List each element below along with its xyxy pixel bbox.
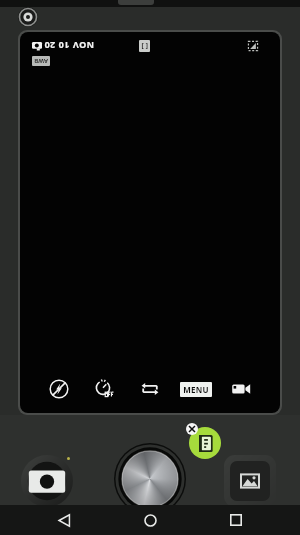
button[interactable]: User manual bbox=[189, 427, 221, 459]
button[interactable]: Flash off bbox=[42, 374, 76, 404]
button[interactable]: MENU bbox=[179, 376, 213, 402]
staticText: [ ] bbox=[141, 41, 148, 51]
staticText: NOV 10 20 bbox=[44, 40, 94, 52]
button[interactable]: Camera mode bbox=[21, 455, 73, 507]
staticText: AWB bbox=[34, 57, 48, 65]
button[interactable]: Dismiss bbox=[186, 423, 198, 435]
button[interactable]: Back bbox=[42, 505, 86, 535]
button[interactable]: Recents bbox=[214, 505, 258, 535]
button[interactable]: Home bbox=[128, 505, 172, 535]
button[interactable]: Gallery bbox=[224, 455, 276, 507]
button[interactable]: Settings bbox=[18, 7, 38, 27]
button[interactable]: Video mode bbox=[224, 374, 258, 404]
button[interactable]: Switch camera bbox=[133, 374, 167, 404]
staticText: MENU bbox=[183, 384, 209, 395]
button[interactable]: Shutter bbox=[114, 443, 186, 515]
button[interactable]: Self timer off bbox=[87, 374, 121, 404]
